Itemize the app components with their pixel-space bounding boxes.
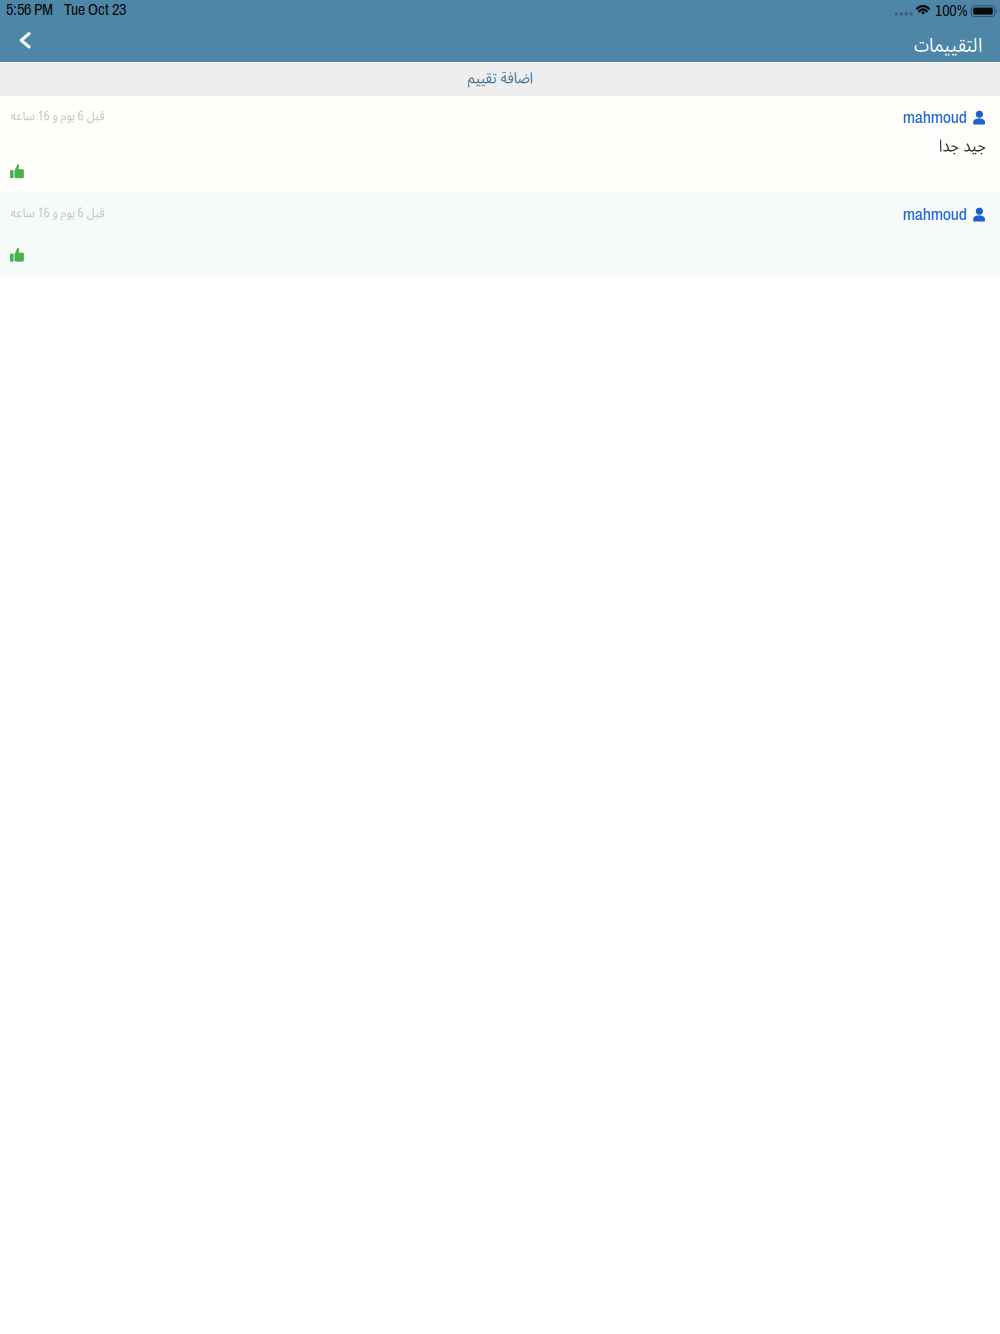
staticText: جيد جدا (938, 133, 985, 157)
staticText: 100% (935, 2, 968, 19)
staticText: اضافة تقييم (467, 66, 533, 88)
button[interactable]: قبل 6 يوم و 16 ساعه (0, 96, 1000, 193)
staticText: mahmoud (903, 108, 967, 126)
button[interactable]: قبل 6 يوم و 16 ساعه (0, 193, 1000, 277)
staticText: التقييمات (913, 30, 982, 58)
button[interactable]: Back (0, 21, 48, 62)
staticText: mahmoud (903, 205, 967, 223)
staticText: 5:56 PM (6, 1, 53, 18)
staticText: قبل 6 يوم و 16 ساعه (10, 106, 104, 124)
staticText: Tue Oct 23 (64, 1, 126, 18)
button[interactable]: اضافة تقييم (0, 63, 1000, 96)
staticText: قبل 6 يوم و 16 ساعه (10, 203, 104, 221)
